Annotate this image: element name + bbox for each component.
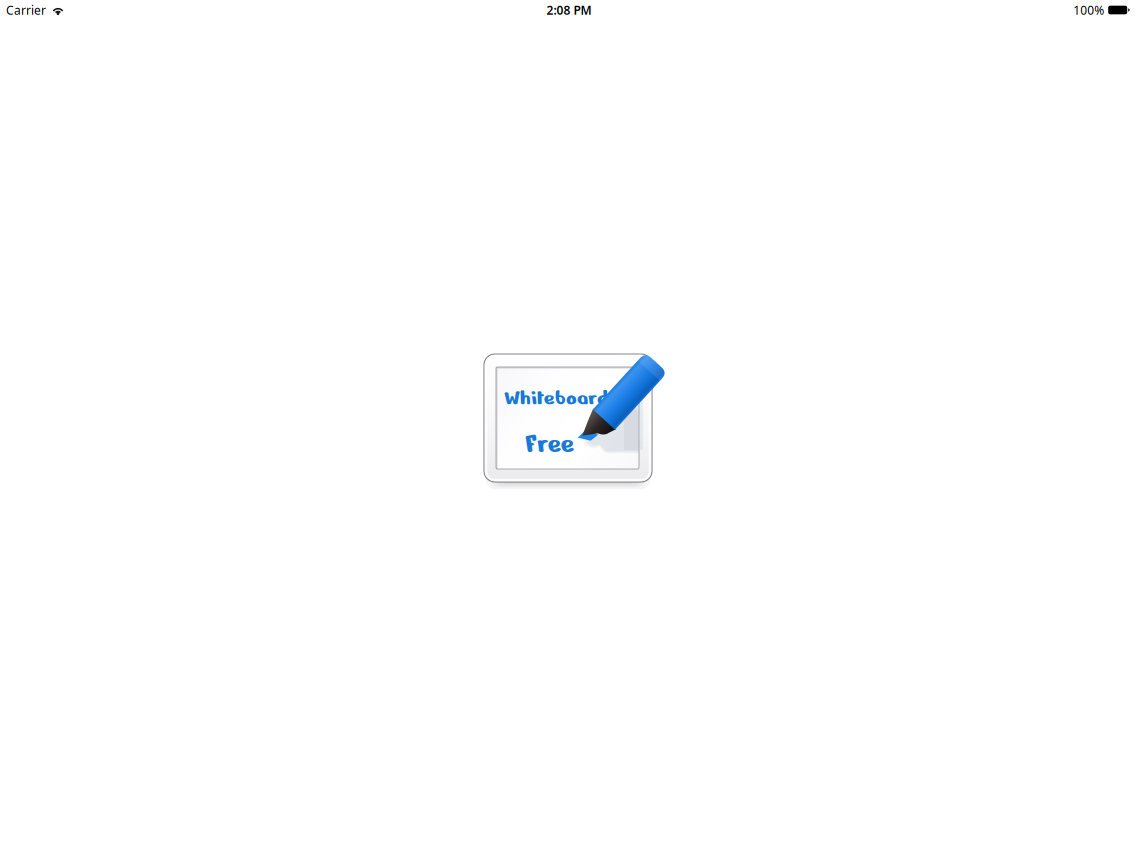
staticText: Carrier	[6, 2, 46, 18]
staticText: 100%	[1073, 2, 1104, 18]
staticText: 2:08 PM	[547, 2, 592, 18]
staticText: Whiteboard	[504, 384, 608, 411]
staticText: Free	[525, 427, 574, 461]
